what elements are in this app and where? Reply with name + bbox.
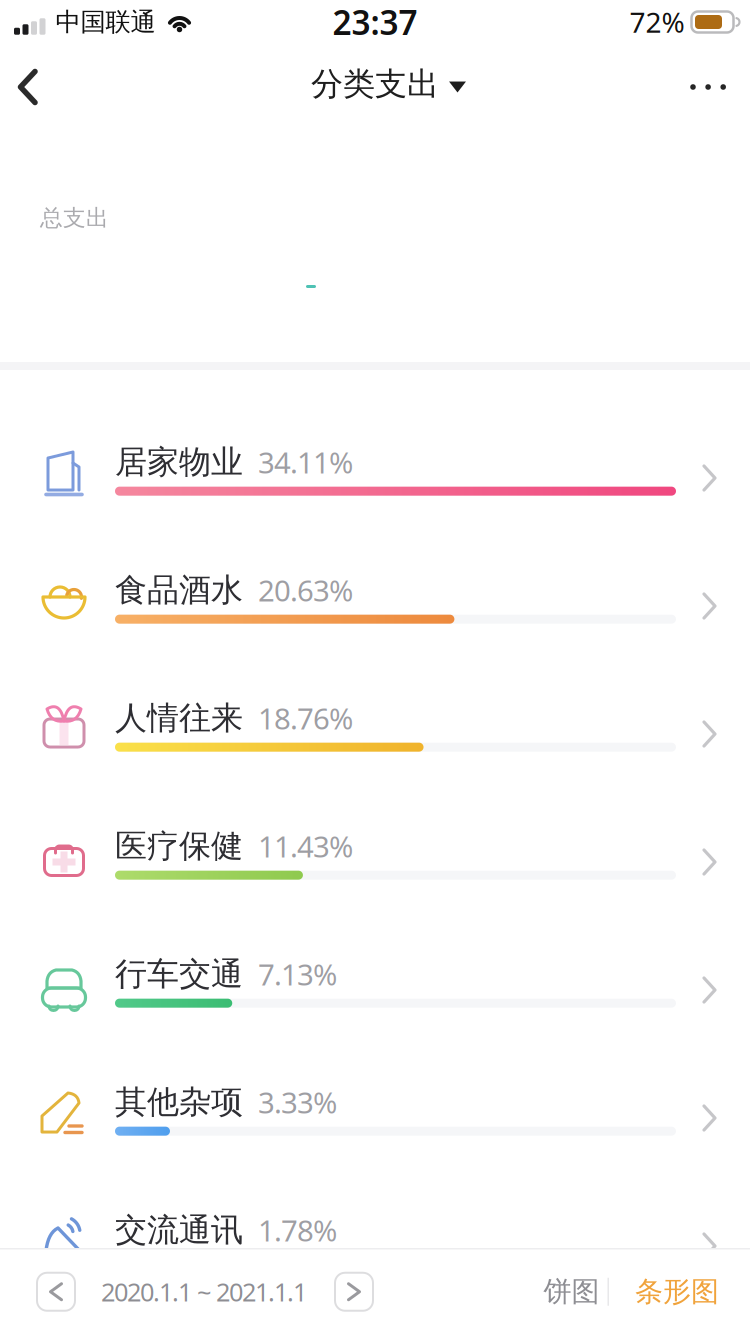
button[interactable]: 更多 [690,70,750,104]
staticText: 1.78% [258,1210,337,1249]
staticText: 3.33% [258,1082,337,1121]
staticText: 分类支出 [311,64,439,104]
button[interactable]: 下一时段 [335,1273,373,1311]
staticText: 食品酒水 [115,570,243,610]
button[interactable]: 分类支出 [311,64,466,104]
staticText: 人情往来 [115,698,243,738]
button[interactable]: 交流通讯 [0,1173,750,1301]
staticText: 72% [629,3,684,41]
staticText: 34.11% [258,442,353,481]
staticText: 交流通讯 [115,1210,243,1250]
staticText: 行车交通 [115,954,243,994]
button[interactable]: 饼图 [543,1265,599,1319]
staticText: 20.63% [258,570,353,609]
button[interactable]: 人情往来 [0,661,750,789]
staticText: 11.43% [258,826,353,865]
staticText: 23:37 [332,0,417,44]
staticText: 2020.1.1 ~ 2021.1.1 [101,1275,307,1308]
staticText: 7.13% [258,954,337,993]
button[interactable]: 上一时段 [37,1273,75,1311]
staticText: 饼图 [543,1275,599,1309]
staticText: 其他杂项 [115,1082,243,1122]
staticText: 中国联通 [55,6,155,37]
button[interactable]: 医疗保健 [0,789,750,917]
staticText: 条形图 [635,1275,719,1309]
staticText: 总支出 [40,204,109,232]
button[interactable]: 行车交通 [0,917,750,1045]
button[interactable]: 条形图 [635,1265,719,1319]
staticText: 居家物业 [115,442,243,482]
staticText: 18.76% [258,698,353,737]
button[interactable]: 返回 [0,61,38,112]
button[interactable]: 其他杂项 [0,1045,750,1173]
button[interactable]: 居家物业 [0,405,750,533]
staticText: 医疗保健 [115,826,243,866]
button[interactable]: 食品酒水 [0,533,750,661]
